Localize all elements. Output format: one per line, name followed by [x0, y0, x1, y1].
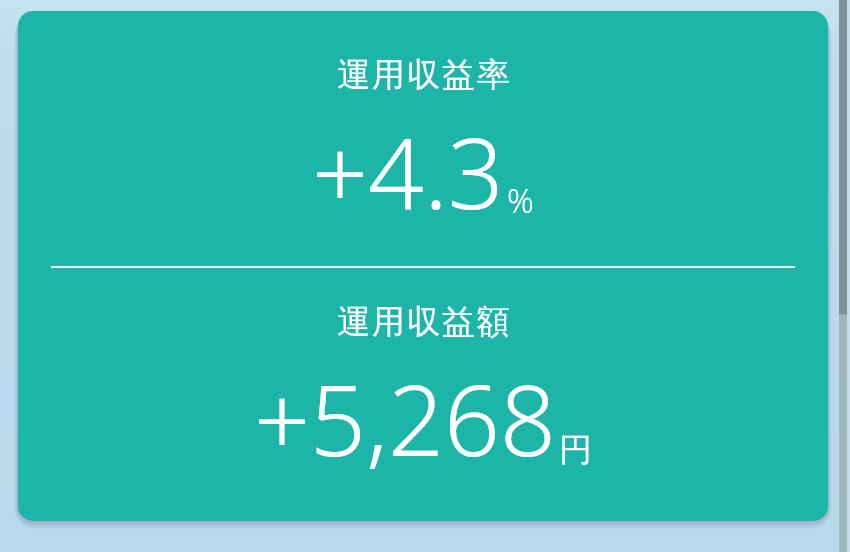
- staticText: 運用収益額: [336, 301, 511, 343]
- staticText: +4.3: [312, 104, 504, 237]
- staticText: 運用収益率: [336, 54, 511, 96]
- staticText: 円: [559, 429, 592, 471]
- staticText: %: [507, 178, 534, 223]
- other: Scroll position: [836, 0, 850, 552]
- staticText: +5,268: [254, 351, 556, 484]
- button[interactable]: 運用収益率: [18, 11, 828, 521]
